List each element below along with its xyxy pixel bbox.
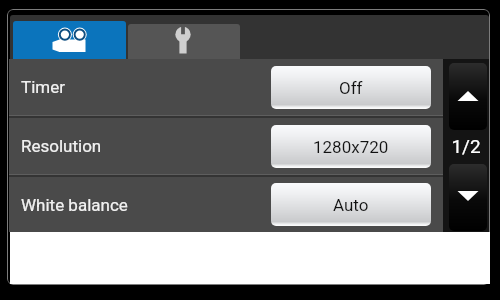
button[interactable]: Video camera settings tab <box>13 21 126 59</box>
staticText: Timer <box>21 77 271 97</box>
button[interactable]: Next page <box>449 164 487 231</box>
button[interactable]: Auto <box>271 183 431 226</box>
staticText: Resolution <box>21 136 271 156</box>
staticText: White balance <box>21 195 271 215</box>
button[interactable]: Off <box>271 66 431 109</box>
button[interactable]: White balance <box>9 177 443 232</box>
staticText: Off <box>339 78 363 98</box>
button[interactable]: Resolution <box>9 118 443 174</box>
button[interactable]: 1280x720 <box>271 125 431 168</box>
button[interactable]: Previous page <box>449 63 487 130</box>
button[interactable]: General settings tab <box>128 24 240 59</box>
button[interactable]: Timer <box>9 59 443 115</box>
staticText: Auto <box>333 195 369 215</box>
staticText: 1/2 <box>443 135 489 157</box>
staticText: 1280x720 <box>313 137 389 157</box>
